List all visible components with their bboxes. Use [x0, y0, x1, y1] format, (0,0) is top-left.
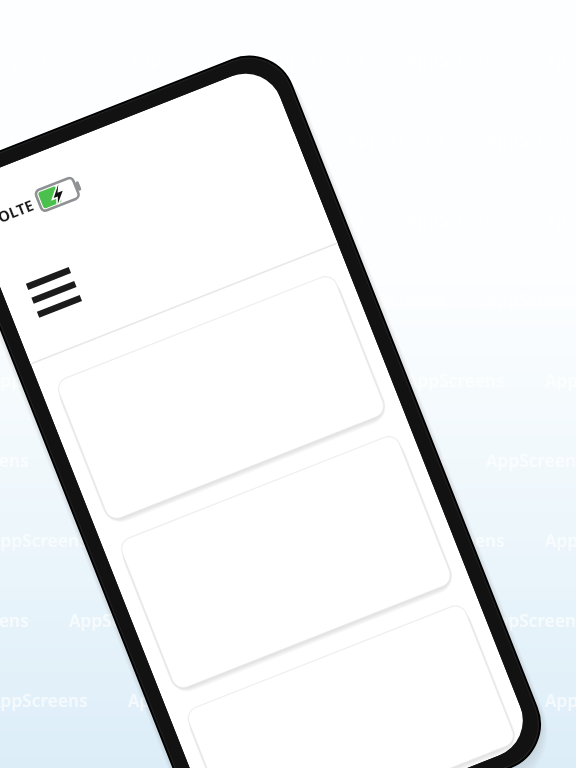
button[interactable]: App screenshot preview — [0, 0, 576, 768]
